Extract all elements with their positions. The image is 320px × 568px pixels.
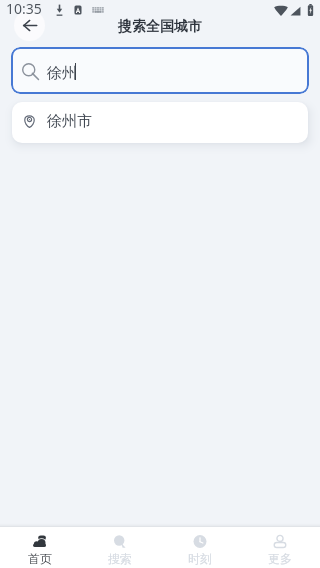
staticText: 更多	[268, 551, 292, 566]
button[interactable]: 首页	[0, 527, 80, 568]
button[interactable]: 更多	[240, 527, 320, 568]
staticText: 10:35	[6, 0, 42, 18]
button[interactable]: 时刻	[160, 527, 240, 568]
staticText: 搜索全国城市	[118, 18, 202, 36]
staticText: 时刻	[188, 551, 212, 566]
staticText: 搜索	[108, 551, 132, 566]
button[interactable]: Back	[14, 10, 45, 41]
staticText: 徐州市	[47, 112, 92, 131]
button[interactable]: 徐州	[11, 47, 309, 94]
staticText: 首页	[28, 551, 52, 566]
button[interactable]: 徐州市	[12, 102, 308, 143]
button[interactable]: 搜索	[80, 527, 160, 568]
staticText: 徐州	[47, 64, 77, 83]
